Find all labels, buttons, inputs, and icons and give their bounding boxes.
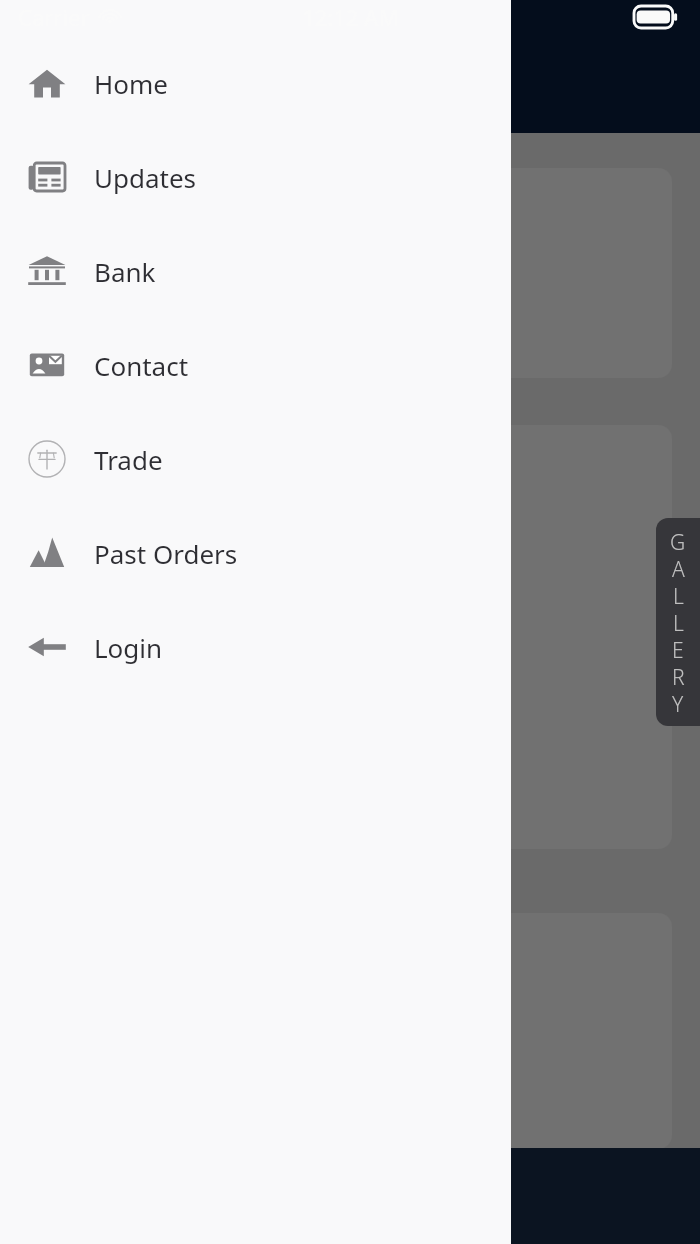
staticText: Login [94,630,163,665]
button[interactable]: Login [0,600,511,694]
staticText: E [672,636,684,663]
staticText: Y [672,690,684,717]
button[interactable] [32,913,672,1149]
button[interactable]: Updates [0,130,511,224]
button[interactable]: Bank [0,224,511,318]
button[interactable]: Contact [0,318,511,412]
button[interactable]: Home [0,36,511,130]
staticText: Home [94,66,168,101]
button[interactable] [32,425,672,849]
staticText: G [670,528,686,555]
staticText: A [672,555,685,582]
staticText: Updates [94,160,197,195]
staticText: ABBEY [54,253,146,294]
button[interactable]: Gallery [656,518,700,726]
staticText: R [672,663,685,690]
staticText: Bank [94,254,156,289]
staticText: Trade [94,442,163,477]
button[interactable]: Past Orders [0,506,511,600]
staticText: Past Orders [94,536,238,571]
staticText: L [673,609,684,636]
staticText: L [673,582,684,609]
button[interactable]: ABBEY [32,168,672,378]
button[interactable]: Trade [0,412,511,506]
staticText: Contact [94,348,189,383]
